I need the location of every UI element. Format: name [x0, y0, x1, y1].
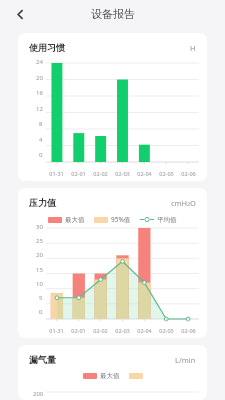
staticText: 01-31 [49, 170, 64, 177]
staticText: 最大值 [65, 216, 85, 224]
staticText: 8 [39, 120, 43, 128]
staticText: 0 [39, 308, 43, 316]
staticText: 平均值 [157, 216, 177, 224]
staticText: 200 [33, 390, 44, 398]
staticText: 最大值 [100, 372, 120, 380]
button[interactable]: Back [9, 3, 31, 25]
staticText: 设备报告 [91, 7, 135, 21]
staticText: H [190, 43, 196, 53]
staticText: 20 [36, 74, 43, 82]
staticText: 5 [39, 294, 43, 302]
staticText: 02-01 [71, 170, 86, 177]
staticText: 02-03 [115, 170, 130, 177]
staticText: cmH2O [171, 198, 196, 208]
staticText: 使用习惯 [29, 42, 65, 53]
staticText: 02-06 [181, 170, 196, 177]
staticText: 02-04 [137, 170, 152, 177]
staticText: 95%值 [111, 215, 131, 224]
staticText: 02-01 [71, 327, 86, 334]
staticText: L/min [175, 355, 196, 365]
staticText: 02-02 [93, 327, 108, 334]
staticText: 02-03 [115, 327, 130, 334]
staticText: 16 [36, 89, 43, 97]
staticText: 20 [36, 251, 43, 259]
staticText: 4 [39, 136, 43, 144]
staticText: 漏气量 [29, 354, 56, 365]
staticText: 25 [36, 237, 43, 245]
staticText: 24 [36, 58, 43, 66]
staticText: 02-04 [137, 327, 152, 334]
staticText: 01-31 [49, 327, 64, 334]
staticText: 10 [36, 280, 43, 288]
staticText: 12 [36, 105, 43, 113]
staticText: 02-02 [93, 170, 108, 177]
staticText: 02-05 [159, 170, 174, 177]
staticText: 0 [39, 151, 43, 159]
staticText: 02-06 [181, 327, 196, 334]
staticText: 15 [36, 266, 43, 274]
staticText: 30 [36, 223, 43, 231]
staticText: 02-05 [159, 327, 174, 334]
staticText: 压力值 [29, 197, 56, 208]
